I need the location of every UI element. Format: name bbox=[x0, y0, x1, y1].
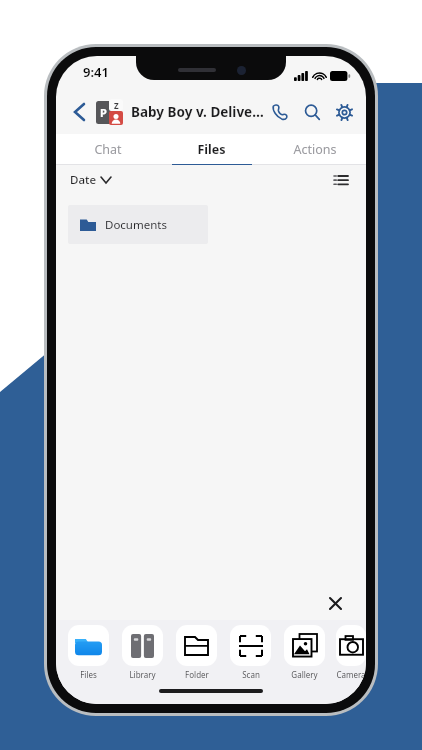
button[interactable]: List view bbox=[330, 169, 352, 191]
button[interactable]: Files bbox=[160, 134, 263, 164]
staticText: Camera bbox=[336, 669, 366, 680]
staticText: Chat bbox=[94, 141, 122, 158]
button[interactable]: Call bbox=[268, 100, 292, 124]
staticText: Documents bbox=[105, 217, 167, 233]
button[interactable]: Files bbox=[66, 625, 111, 680]
button[interactable]: Date bbox=[70, 172, 111, 188]
button[interactable]: Settings bbox=[332, 100, 356, 124]
staticText: Z bbox=[114, 100, 119, 111]
button[interactable]: Close bbox=[322, 590, 348, 616]
button[interactable]: Camera bbox=[336, 625, 366, 680]
button[interactable]: Back bbox=[66, 99, 92, 125]
staticText: Library bbox=[129, 669, 156, 680]
button[interactable]: Library bbox=[120, 625, 165, 680]
staticText: Gallery bbox=[291, 669, 318, 680]
button[interactable]: Actions bbox=[263, 134, 366, 164]
button[interactable]: Folder bbox=[174, 625, 219, 680]
button[interactable]: Search bbox=[300, 100, 324, 124]
button[interactable]: Scan bbox=[228, 625, 273, 680]
staticText: 9:41 bbox=[83, 63, 109, 81]
button[interactable]: Gallery bbox=[282, 625, 327, 680]
staticText: Folder bbox=[185, 669, 209, 680]
button[interactable]: Documents bbox=[68, 205, 208, 244]
staticText: Date bbox=[70, 172, 96, 188]
staticText: P bbox=[100, 105, 107, 120]
staticText: Actions bbox=[293, 141, 337, 158]
staticText: Files bbox=[80, 669, 97, 680]
staticText: Scan bbox=[242, 669, 260, 680]
staticText: Files bbox=[197, 141, 226, 158]
button[interactable]: Chat bbox=[56, 134, 160, 164]
staticText: Baby Boy v. Deliver... bbox=[131, 103, 266, 121]
